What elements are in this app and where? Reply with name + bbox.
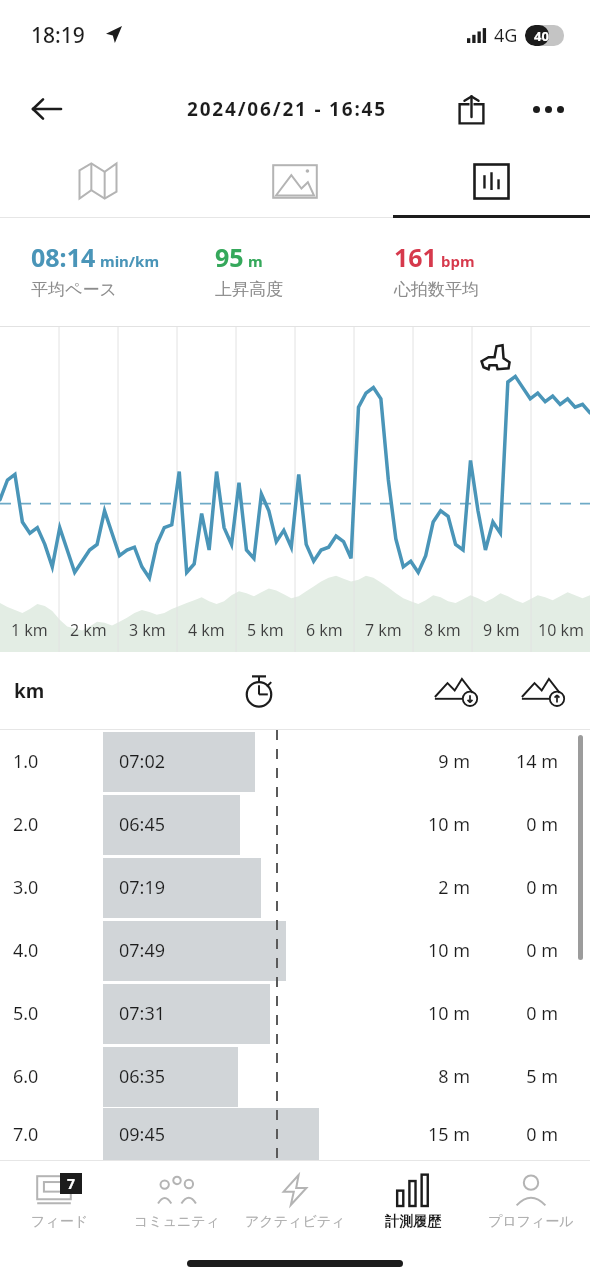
button[interactable]: Back xyxy=(20,83,72,135)
staticText: 7 km xyxy=(365,619,402,641)
staticText: コミュニティ xyxy=(134,1213,220,1231)
staticText: 6.0 xyxy=(13,1064,39,1089)
staticText: 2 m xyxy=(408,875,470,900)
staticText: min/km xyxy=(100,251,160,271)
button[interactable]: Statistics xyxy=(393,144,590,218)
button[interactable]: 1.0 xyxy=(0,730,590,793)
staticText: フィード xyxy=(31,1213,88,1231)
button[interactable]: 3.0 xyxy=(0,856,590,919)
staticText: 07:02 xyxy=(119,749,166,774)
button[interactable]: 2.0 xyxy=(0,793,590,856)
staticText: 5 km xyxy=(247,619,284,641)
staticText: 2 km xyxy=(70,619,107,641)
staticText: 平均ペース xyxy=(31,279,117,300)
staticText: 0 m xyxy=(494,1001,558,1026)
staticText: 4 km xyxy=(188,619,225,641)
staticText: m xyxy=(248,251,263,271)
staticText: 計測履歴 xyxy=(385,1213,441,1231)
staticText: 07:19 xyxy=(119,875,166,900)
button[interactable]: 6.0 xyxy=(0,1045,590,1108)
staticText: 0 m xyxy=(494,875,558,900)
staticText: 上昇高度 xyxy=(215,279,283,300)
button[interactable]: プロフィール xyxy=(472,1168,590,1231)
staticText: 1 km xyxy=(11,619,48,641)
staticText: 161 xyxy=(394,240,437,274)
button[interactable]: 4.0 xyxy=(0,919,590,982)
button[interactable]: More options xyxy=(522,83,574,135)
staticText: 2024/06/21 - 16:45 xyxy=(187,96,387,122)
button[interactable]: 7.0 xyxy=(0,1108,590,1160)
staticText: 8 m xyxy=(408,1064,470,1089)
staticText: 0 m xyxy=(494,938,558,963)
staticText: 0 m xyxy=(494,812,558,837)
staticText: 10 m xyxy=(408,812,470,837)
staticText: 10 m xyxy=(408,938,470,963)
staticText: 1.0 xyxy=(13,749,39,774)
staticText: 3.0 xyxy=(13,875,39,900)
staticText: プロフィール xyxy=(488,1213,574,1231)
button[interactable]: 5.0 xyxy=(0,982,590,1045)
staticText: 5 m xyxy=(494,1064,558,1089)
staticText: bpm xyxy=(441,251,475,271)
staticText: アクティビティ xyxy=(245,1213,346,1231)
staticText: 9 km xyxy=(483,619,520,641)
staticText: 07:49 xyxy=(119,938,166,963)
staticText: 4G xyxy=(494,23,518,48)
staticText: 10 m xyxy=(408,1001,470,1026)
staticText: 9 m xyxy=(408,749,470,774)
staticText: 7 xyxy=(67,1174,76,1193)
button[interactable]: Map xyxy=(0,144,196,218)
staticText: 2.0 xyxy=(13,812,39,837)
staticText: 心拍数平均 xyxy=(394,279,479,300)
staticText: 4.0 xyxy=(13,938,39,963)
button[interactable]: Share xyxy=(446,84,496,134)
button[interactable]: 計測履歴 xyxy=(354,1168,472,1231)
staticText: 06:45 xyxy=(119,812,166,837)
staticText: 95 xyxy=(215,240,244,274)
staticText: 14 m xyxy=(494,749,558,774)
staticText: 15 m xyxy=(408,1122,470,1147)
staticText: 09:45 xyxy=(119,1122,166,1147)
staticText: 40 xyxy=(534,27,549,45)
staticText: 6 km xyxy=(306,619,343,641)
staticText: km xyxy=(14,678,45,704)
staticText: 0 m xyxy=(494,1122,558,1147)
staticText: 08:14 xyxy=(31,240,96,274)
button[interactable]: アクティビティ xyxy=(236,1168,354,1231)
button[interactable]: コミュニティ xyxy=(118,1168,236,1231)
staticText: 8 km xyxy=(424,619,461,641)
staticText: 18:19 xyxy=(31,21,85,50)
staticText: 06:35 xyxy=(119,1064,166,1089)
staticText: 10 km xyxy=(538,619,584,641)
staticText: 7.0 xyxy=(13,1122,39,1147)
button[interactable]: Photos xyxy=(196,144,393,218)
staticText: 07:31 xyxy=(119,1001,166,1026)
staticText: 3 km xyxy=(129,619,166,641)
staticText: 5.0 xyxy=(13,1001,39,1026)
button[interactable]: 7 xyxy=(0,1168,118,1231)
